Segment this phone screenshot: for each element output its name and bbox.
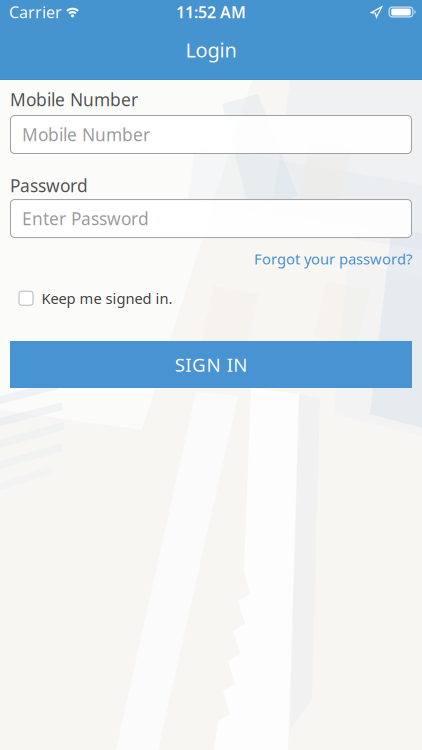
staticText: Mobile Number <box>10 88 138 111</box>
button[interactable]: Keep me signed in. <box>10 288 172 308</box>
button[interactable]: Forgot your password? <box>254 249 412 268</box>
staticText: Mobile Number <box>22 123 150 146</box>
staticText: Forgot your password? <box>254 249 412 268</box>
staticText: Carrier <box>9 1 62 23</box>
staticText: Login <box>185 36 236 63</box>
button[interactable]: SIGN IN <box>10 341 412 388</box>
staticText: SIGN IN <box>175 352 247 377</box>
staticText: Enter Password <box>22 207 149 230</box>
staticText: Keep me signed in. <box>41 288 172 308</box>
button[interactable]: Mobile Number <box>10 115 412 154</box>
staticText: 11:52 AM <box>176 1 246 23</box>
button[interactable]: Enter Password <box>10 199 412 238</box>
staticText: Password <box>10 174 88 197</box>
